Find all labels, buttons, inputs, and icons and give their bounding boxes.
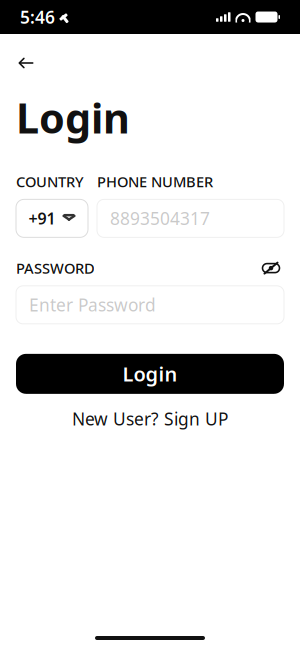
button[interactable]: New User? Sign UP — [16, 407, 284, 431]
staticText: 5:46 — [20, 5, 55, 28]
button[interactable]: 8893504317 — [97, 199, 284, 237]
staticText: +91 — [28, 208, 55, 229]
staticText: 8893504317 — [110, 207, 210, 230]
button[interactable]: Login — [16, 354, 284, 394]
staticText: PASSWORD — [16, 258, 95, 278]
staticText: Enter Password — [29, 293, 156, 316]
staticText: COUNTRY — [16, 172, 84, 191]
staticText: Login — [16, 90, 130, 145]
button[interactable]: +91 — [16, 199, 88, 237]
staticText: PHONE NUMBER — [97, 172, 213, 191]
button[interactable]: Enter Password — [16, 286, 284, 324]
button[interactable]: Show password — [258, 259, 284, 277]
staticText: Login — [122, 361, 177, 387]
button[interactable]: Back — [6, 46, 46, 80]
staticText: New User? Sign UP — [72, 407, 228, 430]
